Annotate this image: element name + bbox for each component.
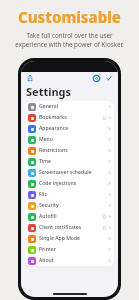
staticText: Bookmarks — [39, 114, 67, 121]
staticText: Settings — [26, 84, 72, 99]
staticText: Restrictions — [39, 147, 68, 154]
button[interactable]: Screensaver schedule — [25, 167, 114, 178]
button[interactable]: Share — [25, 73, 35, 83]
staticText: Appearance — [39, 125, 69, 132]
button[interactable]: General — [25, 101, 114, 112]
button[interactable]: Flic — [25, 189, 114, 200]
button[interactable]: Autofill — [25, 211, 114, 222]
button[interactable]: About — [25, 255, 114, 266]
staticText: Single App Mode — [39, 235, 81, 242]
button[interactable]: Appearance — [25, 123, 114, 134]
button[interactable]: Done — [104, 73, 114, 83]
button[interactable]: Restrictions — [25, 145, 114, 156]
staticText: 0 — [103, 225, 106, 231]
staticText: Printer — [39, 246, 56, 253]
staticText: General — [39, 103, 59, 110]
button[interactable]: Menu — [25, 134, 114, 145]
staticText: Autofill — [39, 213, 57, 220]
staticText: Security — [39, 202, 59, 209]
button[interactable]: Settings — [91, 73, 101, 83]
button[interactable]: Security — [25, 200, 114, 211]
staticText: Code injections — [39, 180, 77, 187]
staticText: Client certificates — [39, 224, 82, 231]
staticText: Time — [39, 158, 51, 165]
staticText: Customisable — [18, 7, 121, 27]
staticText: About — [39, 257, 54, 264]
staticText: Take full control over the user experien… — [15, 31, 124, 49]
button[interactable]: Printer — [25, 244, 114, 255]
staticText: Menu — [39, 136, 53, 143]
button[interactable]: Single App Mode — [25, 233, 114, 244]
staticText: 0 — [103, 214, 106, 220]
staticText: 0 — [103, 115, 106, 121]
button[interactable]: Client certificates — [25, 222, 114, 233]
button[interactable]: Code injections — [25, 178, 114, 189]
button[interactable]: Time — [25, 156, 114, 167]
staticText: Screensaver schedule — [39, 169, 92, 176]
staticText: Flic — [39, 191, 47, 198]
button[interactable]: Bookmarks — [25, 112, 114, 123]
